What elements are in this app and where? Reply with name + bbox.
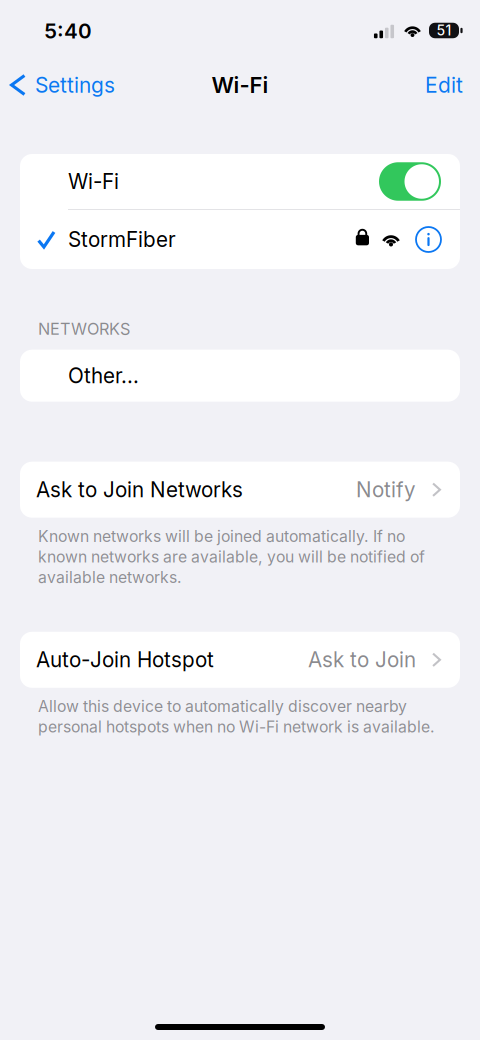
staticText: Allow this device to automatically disco…: [38, 697, 407, 716]
staticText: available networks.: [38, 568, 182, 587]
button[interactable]: StormFiber: [20, 210, 460, 269]
button[interactable]: Ask to Join Networks: [20, 462, 460, 518]
staticText: Other...: [68, 363, 139, 388]
staticText: 5:40: [44, 18, 92, 43]
button[interactable]: More info about StormFiber: [401, 227, 441, 252]
button[interactable]: Settings: [0, 61, 129, 109]
button[interactable]: Other...: [20, 350, 460, 402]
staticText: 51: [436, 22, 451, 39]
button[interactable]: Auto-Join Hotspot: [20, 632, 460, 688]
staticText: known networks are available, you will b…: [38, 547, 425, 566]
staticText: Settings: [35, 72, 115, 98]
staticText: Ask to Join Networks: [36, 477, 243, 502]
staticText: Notify: [356, 477, 416, 502]
staticText: Ask to Join: [308, 647, 416, 672]
staticText: Wi-Fi: [68, 169, 119, 194]
staticText: Auto-Join Hotspot: [36, 647, 214, 672]
staticText: Edit: [425, 72, 463, 98]
button[interactable]: Wi-Fi: [20, 154, 460, 209]
staticText: personal hotspots when no Wi-Fi network …: [38, 717, 435, 736]
staticText: Wi-Fi: [211, 72, 268, 98]
staticText: Known networks will be joined automatica…: [38, 527, 405, 546]
button[interactable]: Edit: [405, 61, 480, 109]
staticText: StormFiber: [68, 227, 176, 252]
staticText: NETWORKS: [38, 319, 130, 339]
